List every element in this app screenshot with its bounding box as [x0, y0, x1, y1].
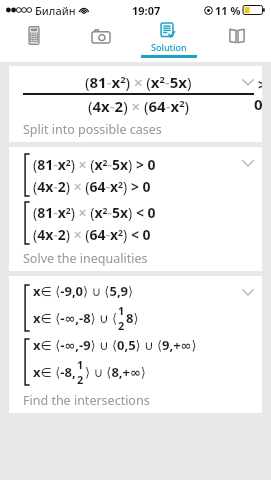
staticText: x∈ ⟨-9,0⟩ ∪ ⟨5,9⟩: [33, 282, 134, 300]
button[interactable]: x∈ ⟨-9,0⟩ ∪ ⟨5,9⟩: [9, 276, 262, 413]
staticText: 2: [118, 318, 125, 333]
staticText: 19:07: [132, 3, 161, 18]
button[interactable]: (81-x2) × (x2-5x) > 0: [9, 147, 262, 271]
staticText: x∈ ⟨-∞,-8⟩ ∪ ⟨: [33, 309, 117, 327]
staticText: ⟩ ∪ ⟨8,+∞⟩: [85, 363, 146, 381]
staticText: x∈ ⟨-8,: [33, 363, 76, 381]
staticText: Solve the inequalities: [23, 250, 148, 267]
button[interactable]: Solution: [135, 20, 203, 62]
staticText: Find the intersections: [23, 392, 150, 409]
staticText: 2: [77, 372, 84, 387]
staticText: (4x-2) × (64-x2) > 0: [33, 177, 151, 196]
button[interactable]: Calculator: [0, 20, 67, 62]
staticText: Split into possible cases: [23, 121, 162, 138]
staticText: Билайн: [35, 3, 76, 18]
staticText: 8⟩: [126, 309, 139, 327]
button[interactable]: (81-x2) × (x2-5x): [9, 66, 262, 142]
staticText: (4x-2) × (64-x2): [88, 96, 190, 116]
staticText: (4x-2) × (64-x2) < 0: [33, 225, 151, 244]
staticText: (81-x2) × (x2-5x): [85, 72, 192, 92]
staticText: Solution: [151, 41, 187, 53]
button[interactable]: Camera: [67, 20, 135, 62]
button[interactable]: Dictionary: [203, 20, 271, 62]
staticText: (81-x2) × (x2-5x) < 0: [33, 203, 156, 222]
staticText: x∈ ⟨-∞,-9⟩ ∪ ⟨0,5⟩ ∪ ⟨9,+∞⟩: [33, 336, 197, 354]
staticText: 1: [118, 303, 125, 318]
staticText: 1: [77, 357, 84, 372]
staticText: (81-x2) × (x2-5x) > 0: [33, 155, 156, 174]
staticText: 11 %: [215, 3, 241, 18]
